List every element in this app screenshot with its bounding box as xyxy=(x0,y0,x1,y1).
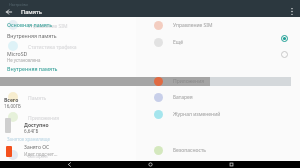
staticText: Память xyxy=(28,95,47,102)
button[interactable]: Selected option xyxy=(280,34,289,43)
staticText: Батарея xyxy=(173,94,193,101)
staticText: Управление SIM xyxy=(28,23,68,30)
staticText: Идет подсчет... xyxy=(24,151,58,157)
staticText: Приложения xyxy=(173,78,205,85)
staticText: Статистика трафика xyxy=(28,44,77,51)
staticText: 6,64ГБ xyxy=(24,128,39,134)
button[interactable]: Back xyxy=(0,6,17,17)
button[interactable]: Управление SIM xyxy=(154,20,213,30)
staticText: Приложения xyxy=(28,115,60,122)
staticText: Безопасность xyxy=(173,147,207,154)
staticText: Память xyxy=(21,8,42,16)
staticText: 16,00ГБ xyxy=(4,103,21,109)
button[interactable]: Ещё xyxy=(154,37,184,47)
button[interactable]: More options xyxy=(284,6,300,17)
staticText: Основная память xyxy=(7,21,53,28)
button[interactable]: Option xyxy=(280,50,289,59)
button[interactable]: Home xyxy=(138,161,162,168)
staticText: Не установлена xyxy=(7,57,41,63)
button[interactable]: Журнал изменений xyxy=(154,109,221,119)
button[interactable]: Безопасность xyxy=(154,145,207,155)
button[interactable]: Recent apps xyxy=(219,161,243,168)
staticText: Доступно xyxy=(24,122,49,129)
button[interactable]: Back xyxy=(57,161,81,168)
button[interactable]: MicroSD xyxy=(7,50,28,57)
staticText: Занятое хранилище xyxy=(7,136,50,142)
staticText: Журнал изменений xyxy=(173,111,221,118)
staticText: Настройки xyxy=(9,2,28,7)
staticText: Внутренняя память xyxy=(7,65,58,72)
button[interactable]: Приложения xyxy=(154,77,205,86)
staticText: Батарея xyxy=(28,153,48,160)
staticText: Занято ОС xyxy=(24,144,50,151)
staticText: Управление SIM xyxy=(173,22,213,29)
button[interactable]: Внутренняя память xyxy=(7,32,57,39)
button[interactable]: Батарея xyxy=(154,92,193,102)
staticText: Всего xyxy=(4,97,19,104)
staticText: Ещё xyxy=(173,39,184,46)
